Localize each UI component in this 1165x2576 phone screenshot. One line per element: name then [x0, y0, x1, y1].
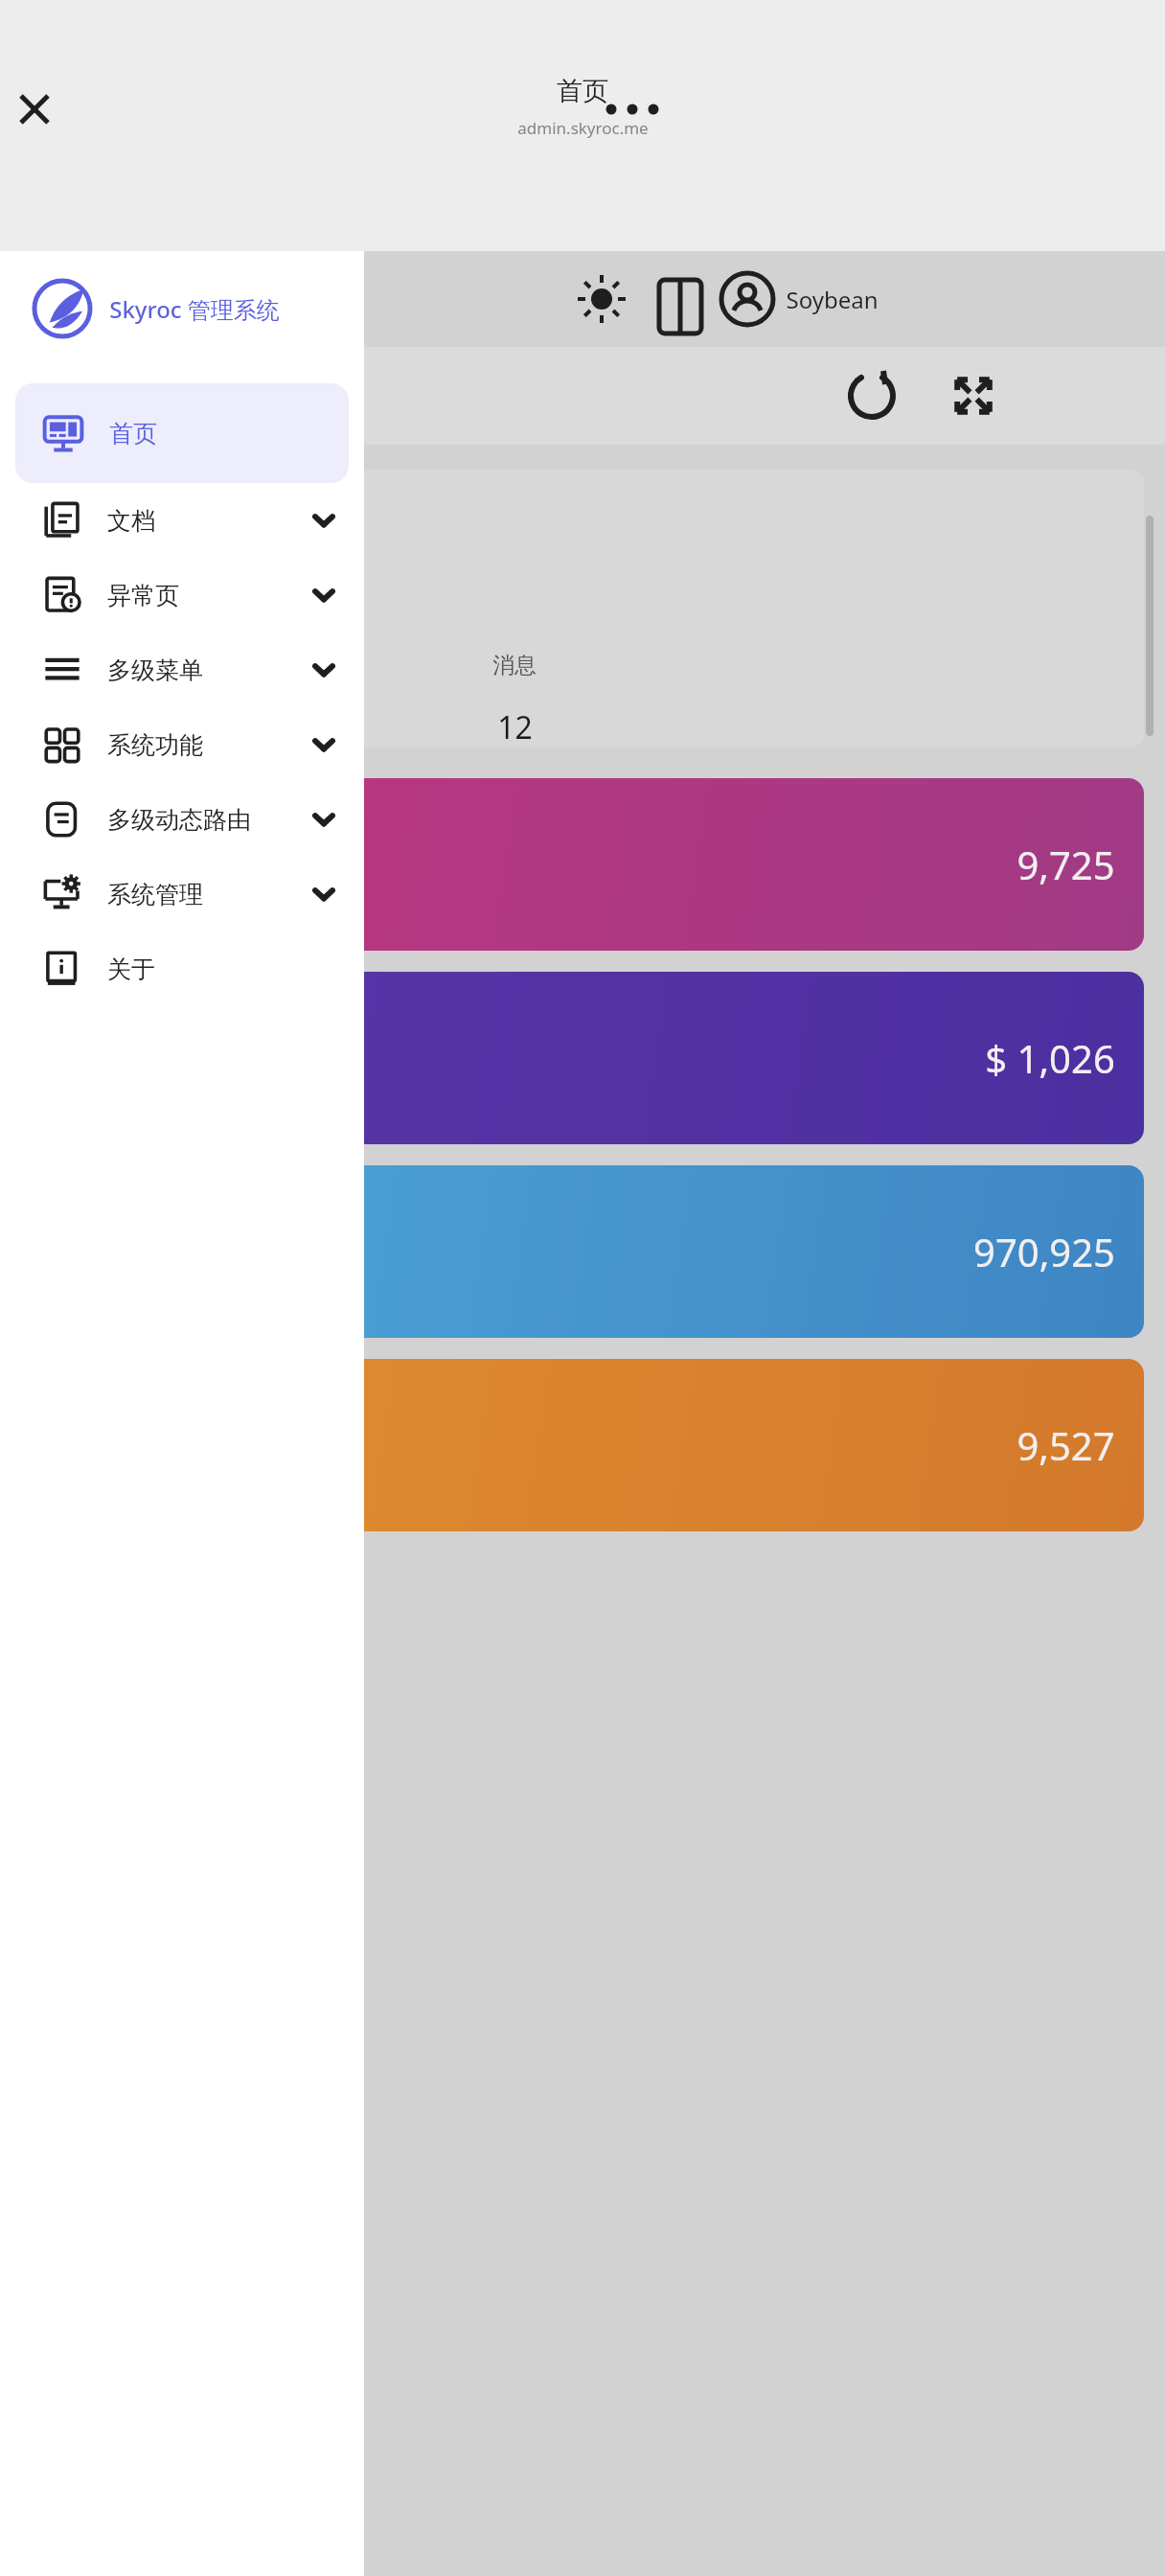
staticText: Skyroc 管理系统 — [109, 293, 280, 325]
button[interactable]: Fullscreen — [945, 367, 1002, 425]
staticText: 9,725 — [1017, 839, 1115, 890]
button[interactable]: 多级动态路由 — [0, 782, 364, 857]
button[interactable]: 系统管理 — [0, 857, 364, 931]
button[interactable]: Refresh — [843, 367, 901, 425]
staticText: 4/16 — [276, 706, 340, 747]
button[interactable]: Layout — [648, 272, 701, 326]
staticText: 关于 — [107, 954, 155, 984]
staticText: 待办 — [286, 652, 330, 679]
staticText: 消息 — [492, 652, 537, 679]
button[interactable]: 970,925 — [21, 1165, 1144, 1338]
button[interactable]: More options — [594, 82, 648, 136]
staticText: 系统管理 — [107, 880, 203, 909]
button[interactable]: 9,527 — [21, 1359, 1144, 1531]
staticText: 目数 — [79, 652, 123, 679]
staticText: 异常页 — [107, 581, 179, 610]
staticText: 0℃ - 25℃! — [50, 593, 161, 625]
staticText: admin.skyroc.me — [517, 117, 649, 139]
staticText: 9,527 — [1017, 1419, 1115, 1471]
staticText: 多级动态路由 — [107, 805, 251, 835]
staticText: 系统功能 — [107, 730, 203, 760]
button[interactable]: Account — [720, 272, 774, 326]
button[interactable]: 系统功能 — [0, 707, 364, 782]
button[interactable]: 关于 — [0, 931, 364, 1006]
staticText: $ 1,026 — [985, 1032, 1115, 1084]
staticText: ，今天又是充满活 — [50, 508, 264, 541]
button[interactable]: 异常页 — [0, 558, 364, 632]
button[interactable]: $ 1,026 — [21, 972, 1144, 1144]
button[interactable]: Skyroc 管理系统 — [31, 251, 364, 366]
staticText: 12 — [497, 706, 533, 747]
button[interactable]: 首页 — [15, 383, 349, 483]
button[interactable]: 多级菜单 — [0, 632, 364, 707]
button[interactable]: 文档 — [0, 483, 364, 558]
staticText: 首页 — [109, 419, 157, 448]
button[interactable]: Theme — [575, 272, 628, 326]
staticText: 文档 — [107, 506, 155, 536]
staticText: 多级菜单 — [107, 655, 203, 685]
staticText: Soybean — [786, 284, 879, 315]
button[interactable]: ，今天又是充满活 — [21, 470, 1144, 747]
button[interactable]: 9,725 — [21, 778, 1144, 951]
staticText: 首页 — [557, 75, 608, 107]
staticText: 970,925 — [973, 1226, 1115, 1277]
button[interactable]: Close — [8, 82, 61, 136]
